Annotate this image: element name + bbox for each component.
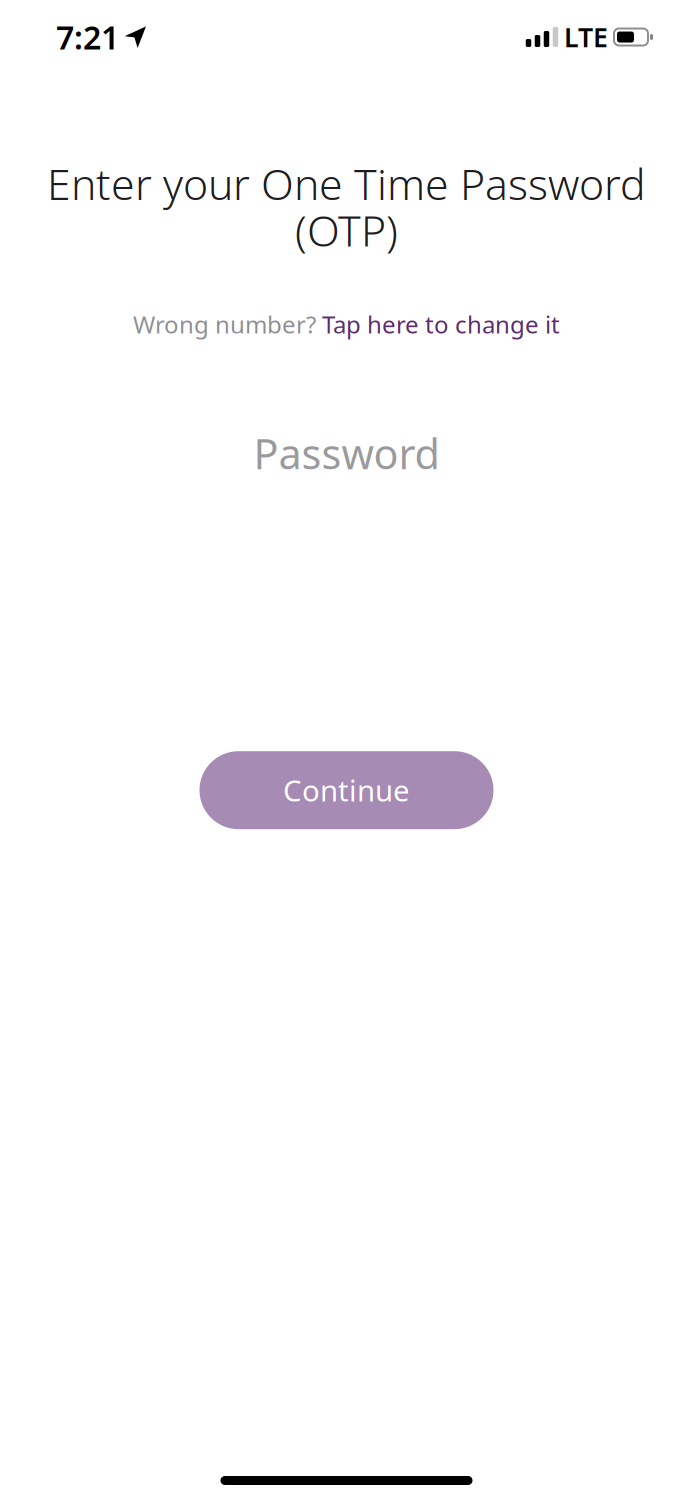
staticText: Tap here to change it bbox=[322, 308, 560, 340]
staticText: Continue bbox=[283, 771, 410, 810]
staticText: LTE bbox=[564, 19, 608, 55]
staticText: (OTP) bbox=[295, 202, 398, 258]
staticText: 7:21 bbox=[56, 16, 119, 58]
staticText: Password bbox=[253, 426, 439, 481]
button[interactable]: One Time Password bbox=[66, 426, 626, 480]
staticText: Wrong number? bbox=[133, 308, 322, 340]
staticText: Enter your One Time Password bbox=[47, 155, 646, 212]
button[interactable]: Tap here to change it bbox=[322, 308, 560, 340]
button[interactable]: Continue bbox=[199, 751, 493, 829]
